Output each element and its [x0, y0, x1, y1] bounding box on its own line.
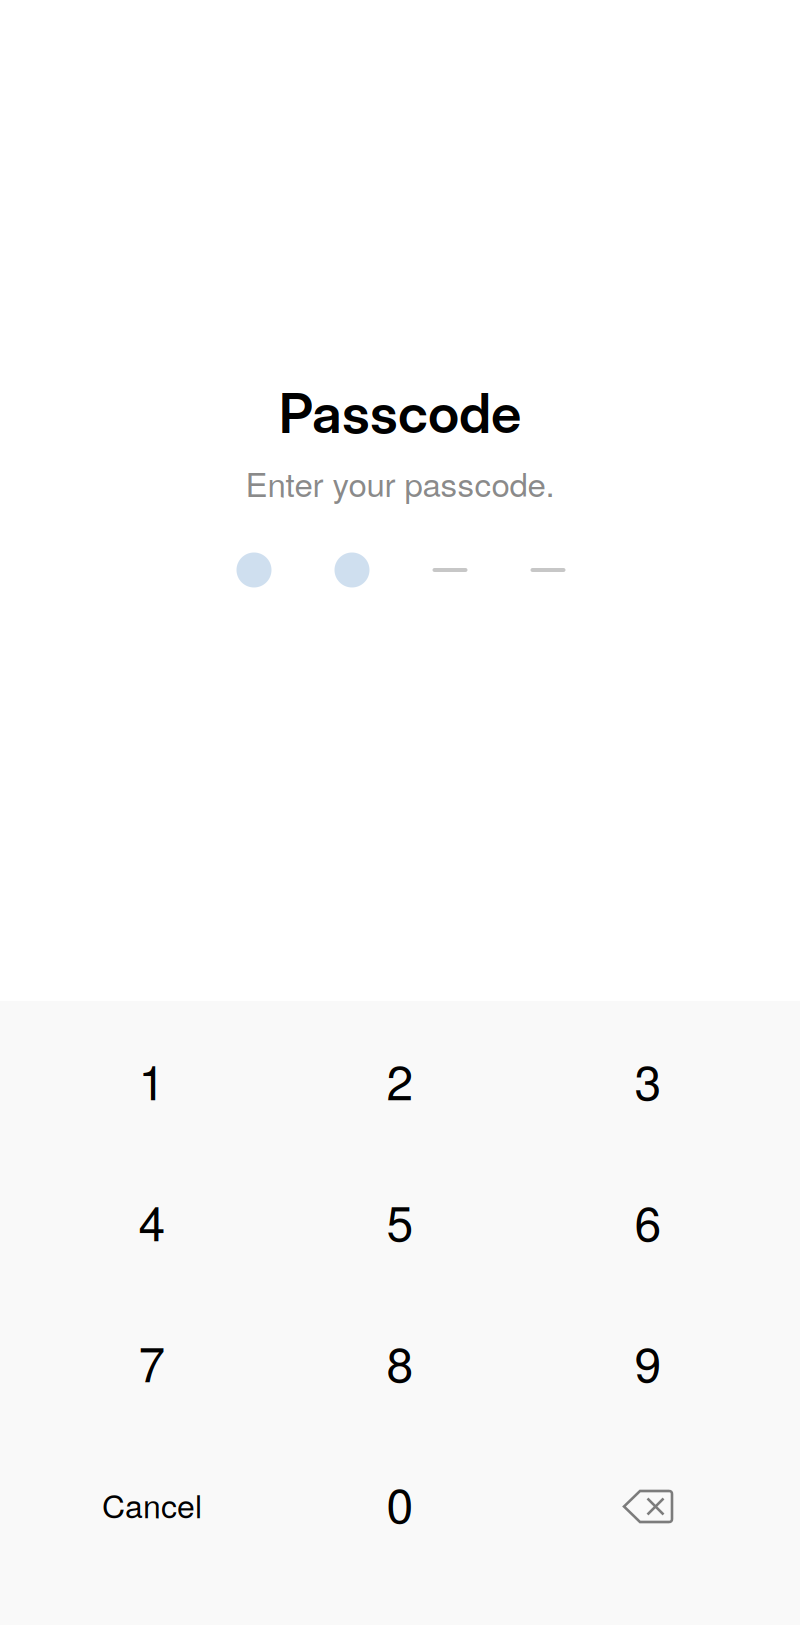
- staticText: 8: [386, 1327, 413, 1396]
- button[interactable]: 7: [28, 1291, 276, 1432]
- button[interactable]: 9: [524, 1291, 772, 1432]
- button[interactable]: 4: [28, 1150, 276, 1291]
- button[interactable]: 0: [276, 1432, 524, 1573]
- button[interactable]: 1: [28, 1009, 276, 1150]
- button[interactable]: 6: [524, 1150, 772, 1291]
- button[interactable]: Cancel: [28, 1432, 276, 1573]
- staticText: Passcode: [279, 380, 521, 446]
- staticText: 9: [634, 1327, 661, 1396]
- staticText: Enter your passcode.: [245, 459, 554, 506]
- staticText: Cancel: [102, 1482, 202, 1527]
- staticText: 2: [386, 1045, 413, 1114]
- staticText: 1: [138, 1045, 165, 1114]
- button[interactable]: Delete: [524, 1432, 772, 1573]
- staticText: 0: [386, 1468, 413, 1537]
- button[interactable]: 2: [276, 1009, 524, 1150]
- staticText: 5: [386, 1186, 413, 1255]
- staticText: 3: [634, 1045, 661, 1114]
- button[interactable]: 3: [524, 1009, 772, 1150]
- button[interactable]: 8: [276, 1291, 524, 1432]
- staticText: 7: [138, 1327, 165, 1396]
- staticText: 4: [138, 1186, 165, 1255]
- button[interactable]: 5: [276, 1150, 524, 1291]
- staticText: 6: [634, 1186, 661, 1255]
